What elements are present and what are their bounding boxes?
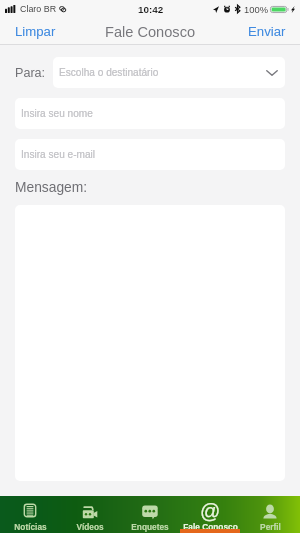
button[interactable]: @ [180, 496, 240, 533]
button[interactable]: Notícias [0, 496, 60, 533]
button[interactable]: Insira seu nome [15, 98, 285, 129]
button[interactable]: Limpar [0, 18, 68, 45]
button[interactable]: Insira seu e-mail [15, 139, 285, 170]
staticText: Limpar [15, 24, 56, 39]
staticText: Escolha o destinatário [59, 67, 266, 78]
button[interactable]: Escolha o destinatário [53, 57, 285, 88]
staticText: Fale Conosco [105, 24, 196, 40]
staticText: Mensagem: [15, 180, 88, 195]
button[interactable]: Enquetes [120, 496, 180, 533]
staticText: Claro BR [20, 4, 57, 14]
staticText: 100% [244, 4, 269, 15]
staticText: Fale Conosco [183, 522, 238, 531]
staticText: Insira seu nome [21, 108, 93, 119]
button[interactable]: Vídeos [60, 496, 120, 533]
staticText: Enviar [248, 24, 286, 39]
staticText: Para: [15, 66, 46, 80]
button[interactable]: Enviar [236, 18, 300, 45]
staticText: Notícias [14, 522, 47, 531]
staticText: Vídeos [76, 522, 104, 531]
staticText: Perfil [260, 522, 281, 531]
button[interactable]: Perfil [240, 496, 300, 533]
staticText: Insira seu e-mail [21, 149, 96, 160]
staticText: 10:42 [138, 4, 164, 15]
staticText: Enquetes [131, 522, 169, 531]
staticText: @ [200, 500, 221, 522]
